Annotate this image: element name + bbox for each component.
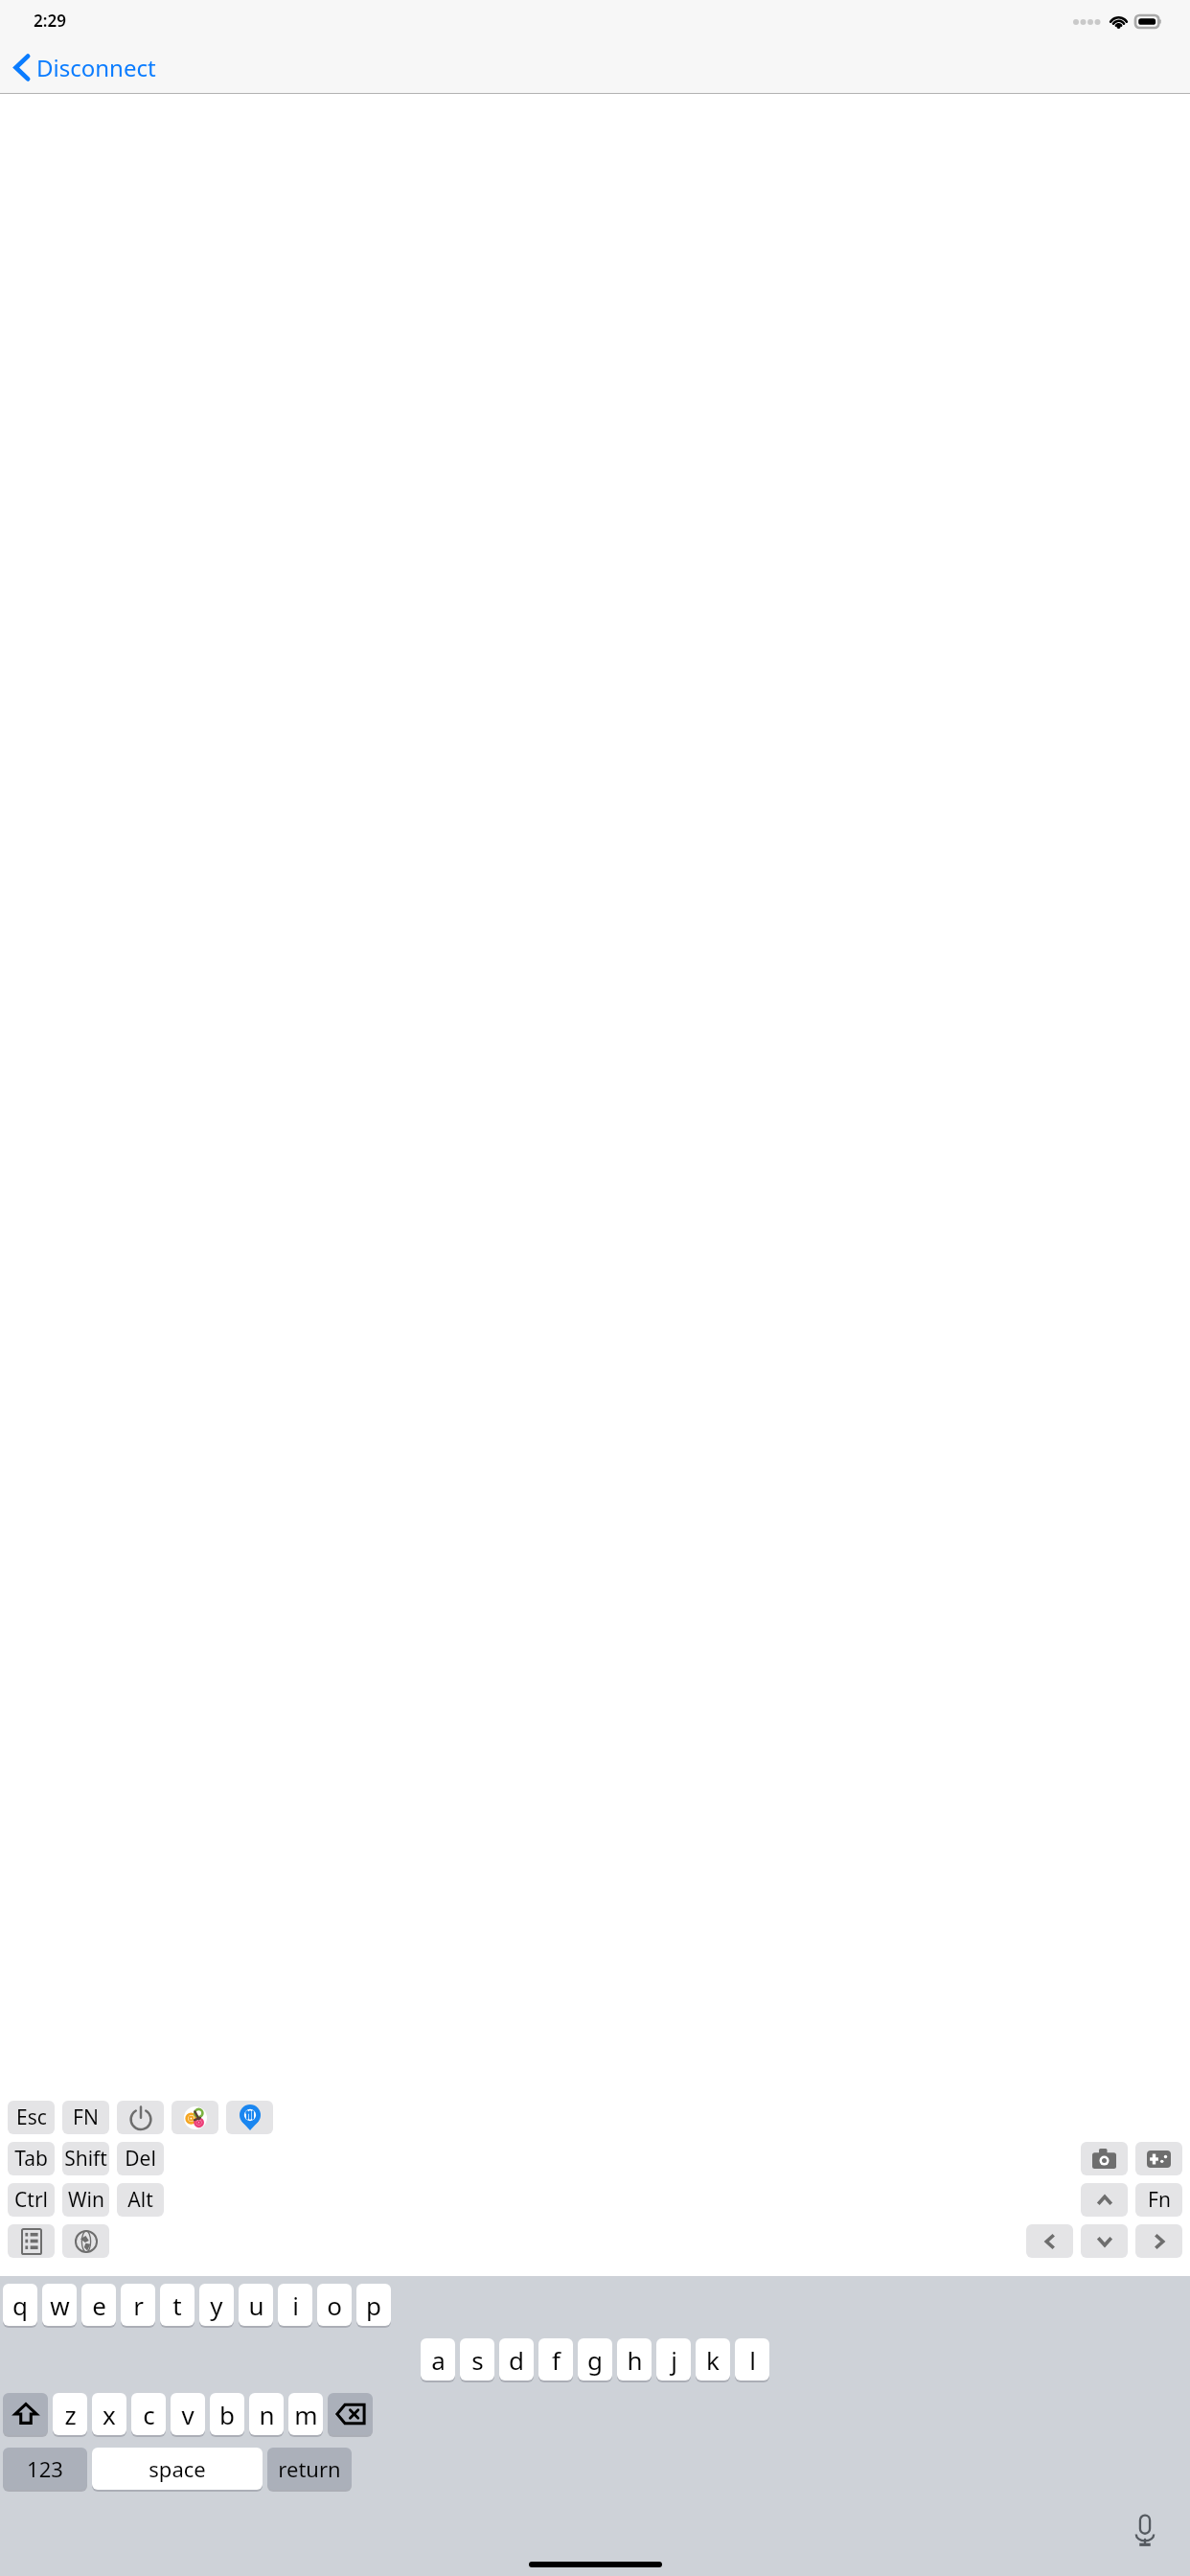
staticText: m — [294, 2398, 318, 2431]
staticText: Win — [68, 2186, 104, 2214]
button[interactable]: q — [3, 2284, 37, 2326]
staticText: 123 — [27, 2454, 63, 2483]
button[interactable]: Del — [117, 2142, 164, 2175]
staticText: i — [292, 2288, 299, 2322]
button[interactable]: g — [578, 2338, 612, 2380]
staticText: b — [219, 2398, 235, 2431]
button[interactable]: d — [499, 2338, 534, 2380]
button[interactable]: Shift — [3, 2393, 48, 2435]
button[interactable]: Up — [1081, 2183, 1128, 2217]
button[interactable]: Globe — [62, 2224, 109, 2258]
button[interactable]: App — [172, 2101, 218, 2134]
staticText: 2:29 — [34, 10, 66, 32]
button[interactable]: Esc — [8, 2101, 55, 2134]
staticText: v — [181, 2398, 195, 2431]
staticText: FN — [73, 2104, 99, 2131]
staticText: z — [64, 2398, 77, 2431]
staticText: e — [92, 2288, 106, 2322]
button[interactable]: b — [210, 2393, 244, 2435]
button[interactable]: Power — [117, 2101, 164, 2134]
button[interactable]: z — [53, 2393, 87, 2435]
button[interactable]: FN — [62, 2101, 109, 2134]
button[interactable]: Right — [1135, 2224, 1182, 2258]
staticText: t — [172, 2288, 182, 2322]
staticText: Esc — [16, 2104, 47, 2131]
button[interactable]: r — [121, 2284, 155, 2326]
button[interactable]: j — [656, 2338, 691, 2380]
staticText: u — [248, 2288, 264, 2322]
button[interactable]: Tab — [8, 2142, 55, 2175]
button[interactable]: space — [92, 2448, 263, 2490]
button[interactable]: Gamepad — [1135, 2142, 1182, 2175]
button[interactable]: o — [317, 2284, 352, 2326]
button[interactable]: Camera — [1081, 2142, 1128, 2175]
button[interactable]: Backspace — [328, 2393, 373, 2435]
button[interactable]: Disconnect — [10, 46, 161, 89]
staticText: o — [327, 2288, 342, 2322]
staticText: y — [210, 2288, 223, 2322]
staticText: x — [103, 2398, 116, 2431]
button[interactable]: e — [81, 2284, 116, 2326]
staticText: d — [509, 2343, 524, 2377]
staticText: Fn — [1148, 2186, 1171, 2214]
staticText: s — [471, 2343, 484, 2377]
button[interactable]: Fn — [1135, 2183, 1182, 2217]
button[interactable]: c — [131, 2393, 166, 2435]
staticText: g — [587, 2343, 603, 2377]
button[interactable]: Left — [1026, 2224, 1073, 2258]
button[interactable]: a — [421, 2338, 455, 2380]
staticText: n — [259, 2398, 275, 2431]
staticText: Del — [125, 2145, 156, 2173]
button[interactable]: v — [171, 2393, 205, 2435]
staticText: p — [366, 2288, 381, 2322]
staticText: Tab — [14, 2145, 48, 2173]
button[interactable]: Restaurants — [226, 2101, 273, 2134]
button[interactable]: s — [460, 2338, 494, 2380]
staticText: f — [552, 2343, 561, 2377]
button[interactable]: Win — [62, 2183, 109, 2217]
button[interactable]: Ctrl — [8, 2183, 55, 2217]
button[interactable]: x — [92, 2393, 126, 2435]
staticText: h — [627, 2343, 643, 2377]
button[interactable]: m — [288, 2393, 323, 2435]
button[interactable]: w — [42, 2284, 77, 2326]
button[interactable]: f — [538, 2338, 573, 2380]
staticText: Disconnect — [36, 52, 156, 83]
staticText: Ctrl — [14, 2186, 48, 2214]
button[interactable]: Down — [1081, 2224, 1128, 2258]
button[interactable]: Menu — [8, 2224, 55, 2258]
staticText: Alt — [127, 2186, 153, 2214]
button[interactable]: 123 — [3, 2448, 87, 2490]
staticText: w — [50, 2288, 70, 2322]
button[interactable]: u — [239, 2284, 273, 2326]
button[interactable]: Alt — [117, 2183, 164, 2217]
button[interactable]: y — [199, 2284, 234, 2326]
button[interactable]: l — [735, 2338, 769, 2380]
button[interactable]: i — [278, 2284, 312, 2326]
staticText: Shift — [64, 2145, 107, 2173]
staticText: a — [431, 2343, 446, 2377]
button[interactable]: n — [249, 2393, 284, 2435]
button[interactable]: return — [267, 2448, 352, 2490]
button[interactable]: h — [617, 2338, 652, 2380]
button[interactable]: p — [356, 2284, 391, 2326]
staticText: r — [133, 2288, 144, 2322]
staticText: space — [149, 2454, 206, 2483]
staticText: l — [749, 2343, 756, 2377]
staticText: c — [143, 2398, 155, 2431]
staticText: k — [706, 2343, 720, 2377]
staticText: return — [278, 2454, 341, 2483]
button[interactable]: k — [696, 2338, 730, 2380]
staticText: q — [12, 2288, 28, 2322]
button[interactable]: Dictation — [1129, 2515, 1161, 2547]
button[interactable]: t — [160, 2284, 195, 2326]
staticText: j — [671, 2343, 677, 2377]
button[interactable]: Shift — [62, 2142, 109, 2175]
